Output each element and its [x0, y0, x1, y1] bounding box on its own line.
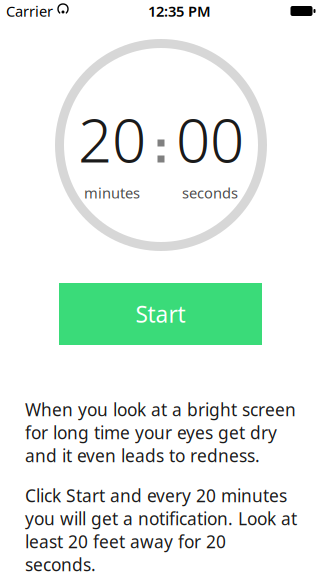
staticText: 12:35 PM — [148, 1, 211, 21]
staticText: Click Start and every 20 minutes you wil… — [25, 484, 297, 572]
staticText: seconds — [182, 183, 238, 203]
staticText: When you look at a bright screen for lon… — [25, 398, 296, 467]
staticText: Start — [135, 299, 185, 329]
button[interactable]: Start — [59, 283, 262, 345]
staticText: Carrier — [6, 1, 53, 21]
staticText: 20 — [78, 99, 146, 179]
staticText: minutes — [84, 183, 140, 203]
staticText: 00 — [176, 99, 244, 179]
